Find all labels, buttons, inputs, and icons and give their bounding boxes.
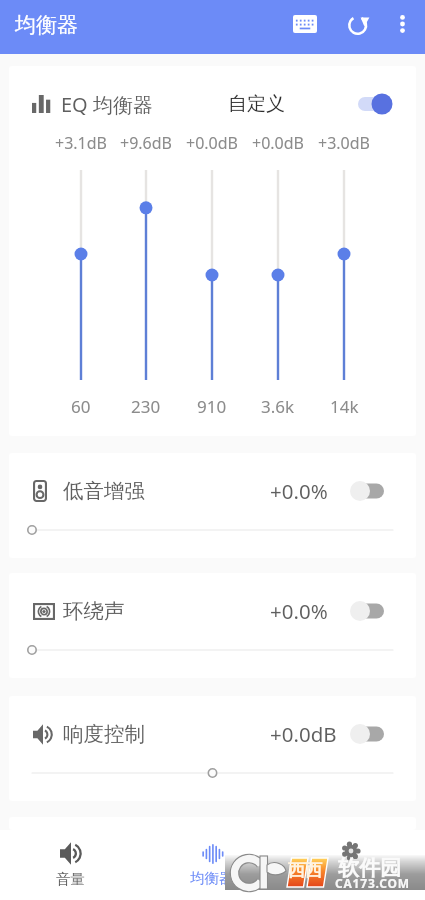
staticText: 230 (131, 395, 161, 418)
staticText: 60 (71, 395, 91, 418)
staticText: EQ 均衡器 (61, 91, 153, 118)
staticText: 自定义 (228, 92, 285, 116)
staticText: 西西 (288, 860, 322, 881)
button[interactable]: Toggle (354, 479, 394, 503)
staticText: 环绕声 (63, 598, 125, 624)
staticText: 响度控制 (63, 721, 145, 747)
staticText: 低音增强 (63, 478, 145, 504)
button[interactable] (283, 830, 425, 900)
button[interactable]: 音量 (0, 830, 141, 900)
button[interactable]: Refresh (342, 8, 374, 40)
staticText: +9.6dB (120, 132, 172, 154)
staticText: 14k (330, 395, 359, 418)
staticText: +3.1dB (55, 132, 107, 154)
staticText: CA173.COM (335, 875, 410, 891)
staticText: +3.0dB (318, 132, 370, 154)
staticText: 音量 (56, 870, 85, 888)
button[interactable]: 均衡器 (141, 830, 283, 900)
staticText: +0.0dB (252, 132, 304, 154)
button[interactable]: Keyboard (289, 8, 321, 40)
staticText: +0.0% (270, 597, 328, 625)
staticText: +0.0dB (186, 132, 238, 154)
staticText: 3.6k (261, 395, 295, 418)
staticText: 软件园 (338, 855, 401, 881)
staticText: 910 (197, 395, 227, 418)
staticText: +0.0% (270, 477, 328, 505)
staticText: +0.0dB (270, 720, 337, 748)
staticText: 均衡器 (15, 12, 78, 38)
button[interactable]: Toggle (354, 722, 394, 746)
staticText: 均衡器 (190, 869, 234, 887)
button[interactable]: Toggle (354, 599, 394, 623)
button[interactable]: Equalizer toggle (358, 92, 398, 116)
button[interactable]: More options (387, 9, 417, 39)
